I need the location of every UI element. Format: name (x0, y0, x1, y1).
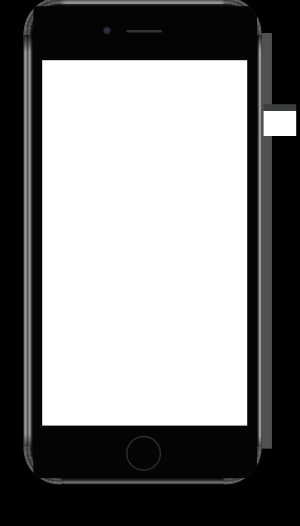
other: Smartphone device mockup (0, 0, 300, 526)
